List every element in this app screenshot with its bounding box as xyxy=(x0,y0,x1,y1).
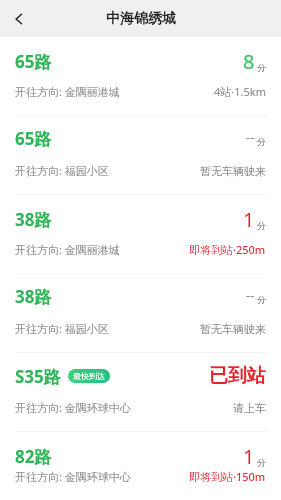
staticText: 暂无车辆驶来 xyxy=(200,164,266,178)
button[interactable]: 38路 xyxy=(0,274,281,352)
button[interactable]: Back xyxy=(0,0,38,37)
staticText: 38路 xyxy=(15,285,52,308)
staticText: 开往方向: 金隅丽港城 xyxy=(15,242,120,257)
staticText: 开往方向: 金隅环球中心 xyxy=(15,469,131,484)
staticText: 最快到达 xyxy=(73,371,105,381)
staticText: 暂无车辆驶来 xyxy=(200,322,266,336)
staticText: 开往方向: 福园小区 xyxy=(15,321,109,336)
staticText: 65路 xyxy=(15,50,52,73)
staticText: -- xyxy=(246,128,255,146)
staticText: 1 xyxy=(243,206,255,233)
staticText: 分 xyxy=(257,220,266,231)
staticText: 分 xyxy=(257,457,266,468)
staticText: 分 xyxy=(257,294,266,305)
staticText: 请上车 xyxy=(233,401,266,415)
staticText: 开往方向: 金隅丽港城 xyxy=(15,84,120,99)
button[interactable]: 82路 xyxy=(0,432,281,500)
staticText: 开往方向: 金隅环球中心 xyxy=(15,400,131,415)
staticText: 已到站 xyxy=(209,364,266,388)
button[interactable]: S35路 xyxy=(0,353,281,431)
staticText: 82路 xyxy=(15,445,52,468)
staticText: 中海锦绣城 xyxy=(106,10,176,28)
staticText: 即将到站·250m xyxy=(189,242,266,257)
staticText: 65路 xyxy=(15,127,52,150)
staticText: 分 xyxy=(257,62,266,73)
button[interactable]: 38路 xyxy=(0,195,281,273)
staticText: -- xyxy=(246,286,255,304)
staticText: 38路 xyxy=(15,208,52,231)
staticText: 开往方向: 福园小区 xyxy=(15,163,109,178)
staticText: 即将到站·150m xyxy=(189,469,266,484)
staticText: 1 xyxy=(243,443,255,470)
staticText: 分 xyxy=(257,136,266,147)
staticText: 8 xyxy=(243,48,255,75)
staticText: 4站·1.5km xyxy=(214,84,266,99)
staticText: S35路 xyxy=(15,365,61,388)
button[interactable]: 65路 xyxy=(0,116,281,194)
button[interactable]: 65路 xyxy=(0,37,281,115)
